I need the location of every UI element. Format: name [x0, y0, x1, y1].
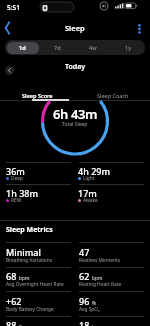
staticText: Awake	[83, 197, 98, 204]
staticText: Body Battery Change	[6, 306, 54, 313]
staticText: Breathing Variations	[6, 257, 53, 264]
button[interactable]: Sleep Coach	[75, 89, 150, 101]
staticText: Resting Heart Rate	[79, 281, 122, 288]
staticText: 36m	[6, 165, 25, 177]
staticText: Avg Overnight Heart Rate	[6, 281, 64, 288]
staticText: Sleep Coach	[97, 92, 129, 99]
button[interactable]: 1y	[110, 40, 145, 55]
staticText: 96 %	[79, 295, 96, 307]
staticText: 5:51	[7, 3, 20, 12]
staticText: Minimal	[6, 246, 41, 258]
staticText: Light	[83, 175, 95, 182]
button[interactable]	[132, 21, 147, 37]
staticText: 1h 38m	[6, 187, 38, 199]
button[interactable]: 4w	[75, 40, 110, 55]
staticText: Sleep	[65, 23, 85, 33]
staticText: 62 bpm	[79, 270, 103, 282]
staticText: Deep	[11, 175, 23, 182]
staticText: Total Sleep	[62, 121, 88, 128]
button[interactable]: Sleep Score	[0, 89, 75, 101]
button[interactable]: 1d	[5, 40, 40, 55]
staticText: 17m	[78, 187, 97, 199]
button[interactable]	[0, 20, 18, 36]
staticText: 6h 43m	[53, 105, 98, 123]
staticText: 18 bpm	[79, 319, 103, 326]
staticText: +62	[6, 295, 22, 307]
staticText: 68 bpm	[6, 270, 30, 282]
staticText: REM	[11, 197, 22, 204]
staticText: 4h 29m	[78, 165, 110, 177]
button[interactable]: 7d	[40, 40, 75, 55]
staticText: Restless Moments	[79, 257, 120, 264]
staticText: Sleep Score	[22, 92, 53, 99]
staticText: 7d	[54, 44, 61, 51]
staticText: Avg SpO₂	[79, 306, 100, 313]
staticText: 4w	[89, 44, 97, 51]
staticText: 1d	[19, 44, 26, 51]
staticText: Today	[65, 62, 86, 72]
button[interactable]	[5, 66, 14, 75]
staticText: 47	[79, 246, 90, 258]
staticText: 88 %	[6, 319, 23, 326]
staticText: Sleep Metrics	[6, 225, 53, 235]
staticText: 1y	[125, 44, 131, 51]
